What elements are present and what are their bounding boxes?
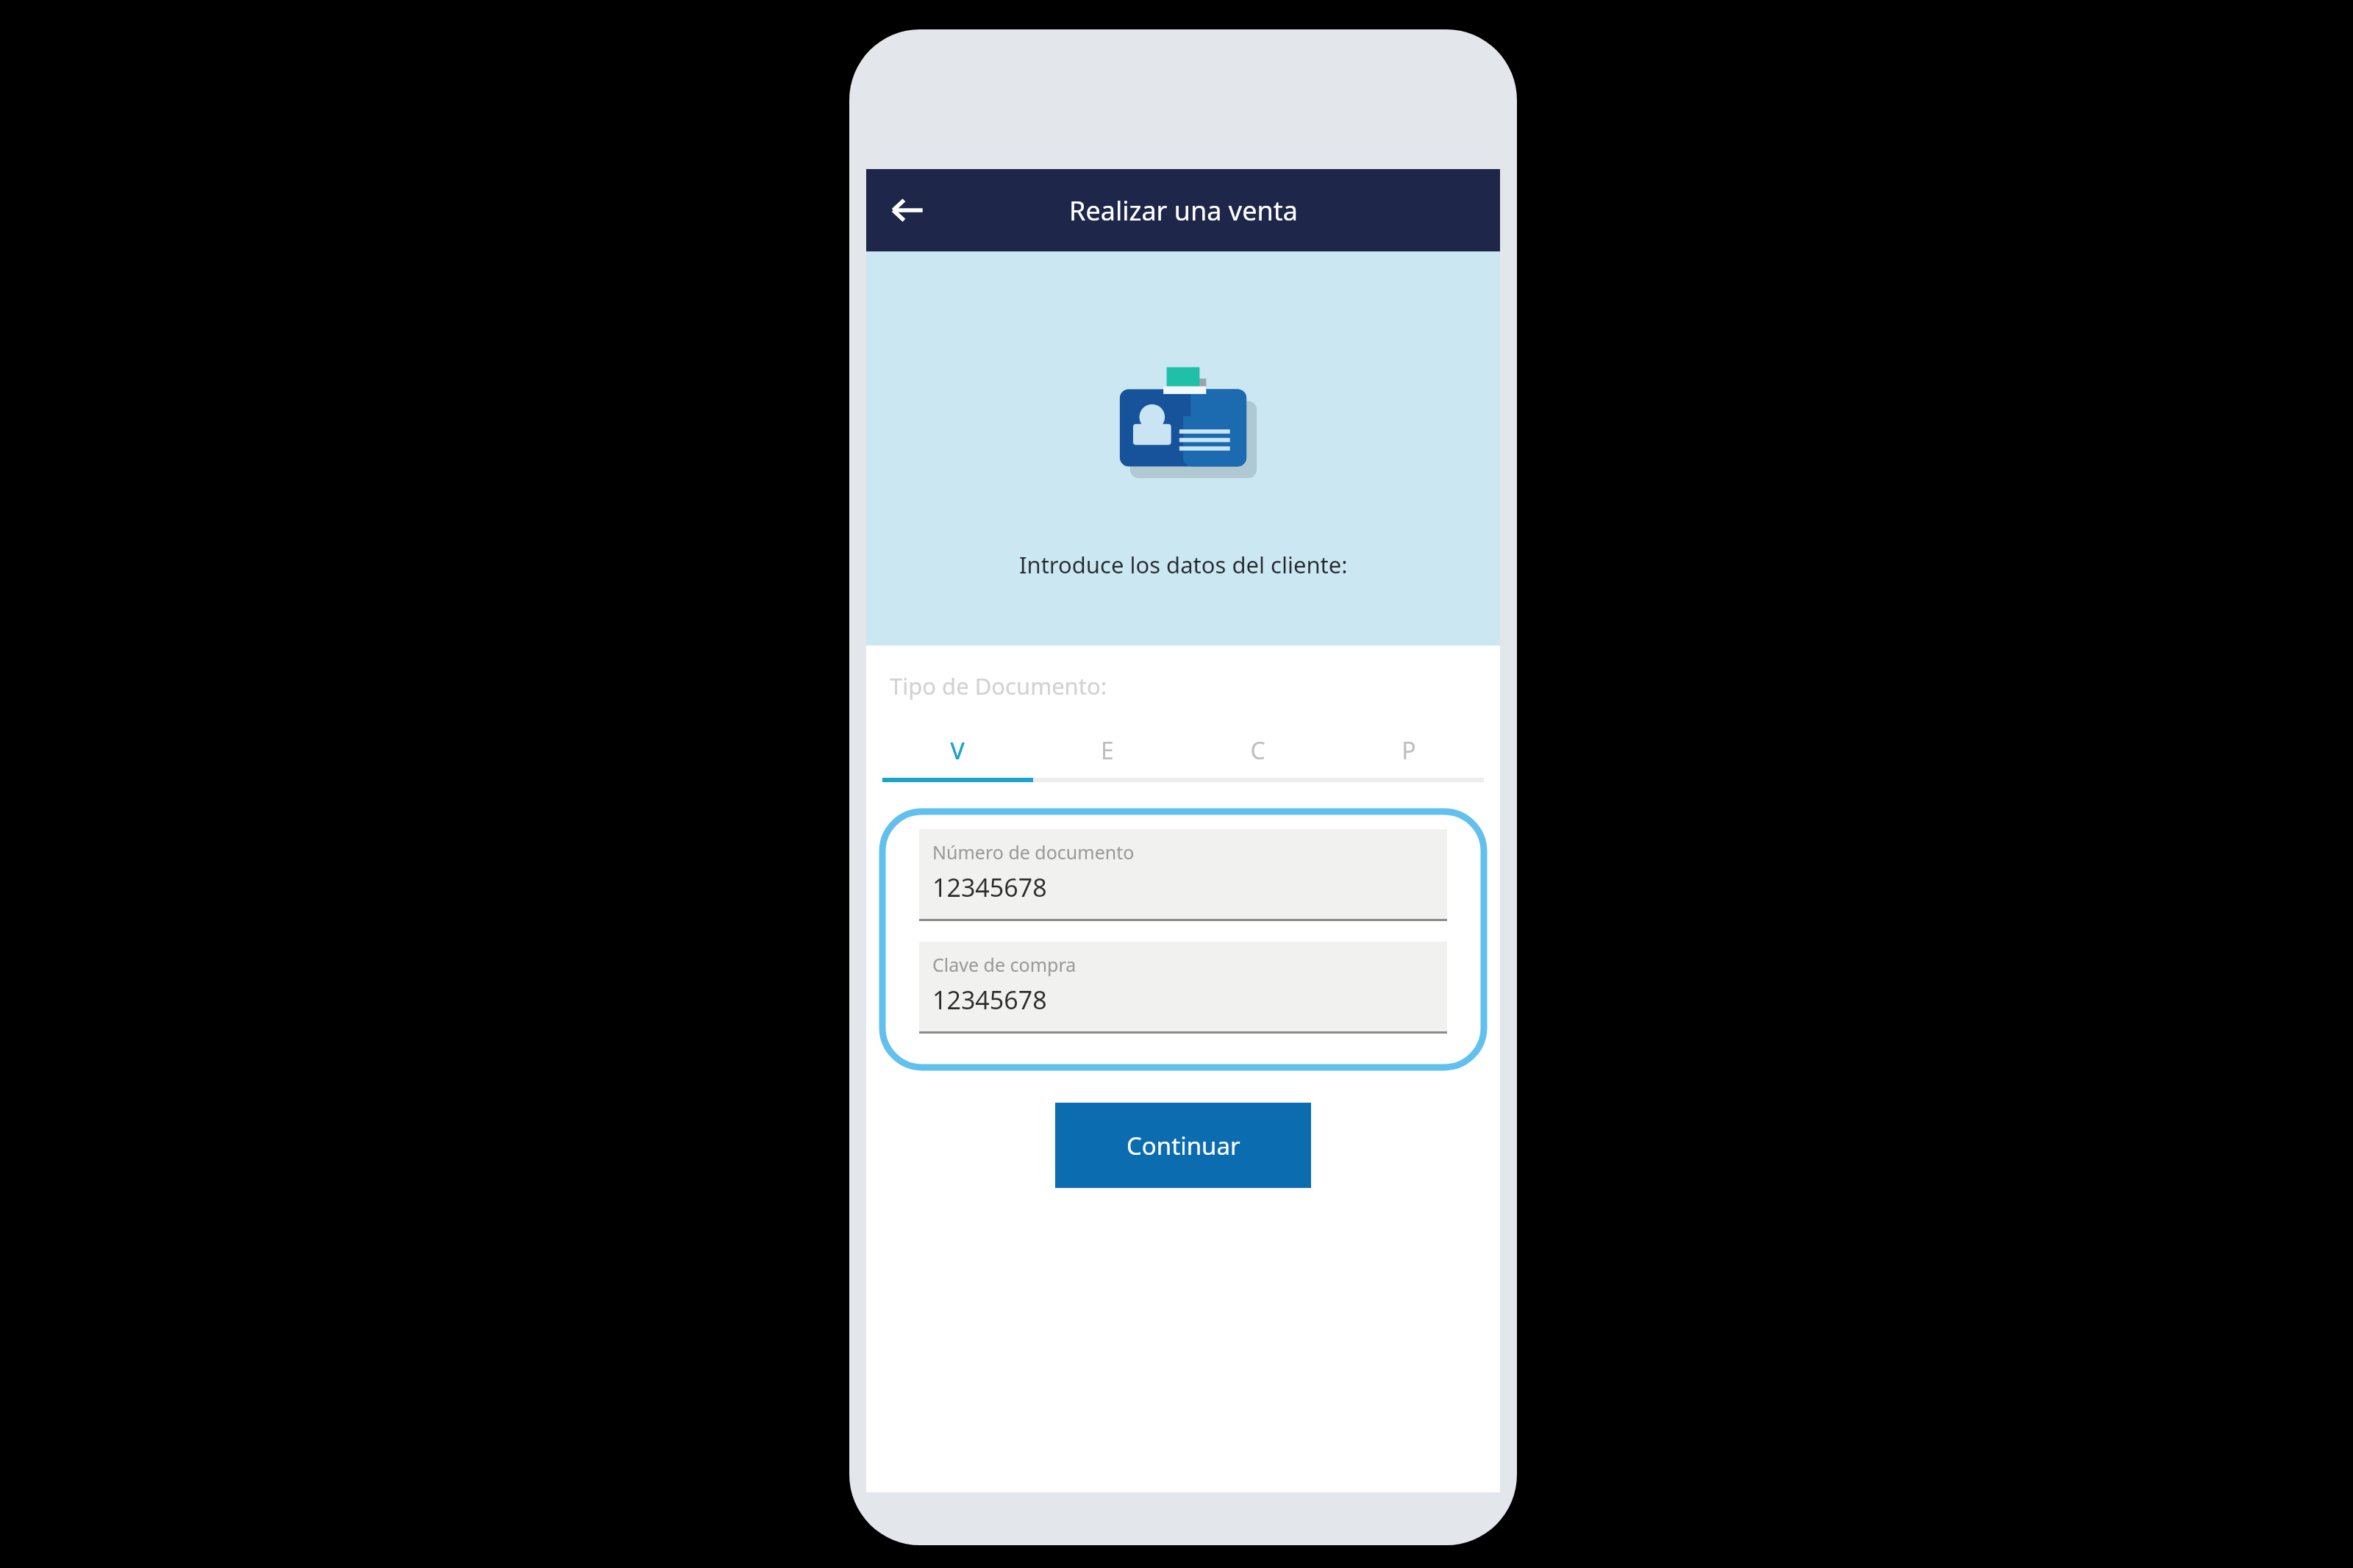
staticText: P xyxy=(1402,734,1416,767)
button[interactable]: Número de documento xyxy=(919,829,1447,921)
staticText: Clave de compra xyxy=(932,952,1076,977)
staticText: Tipo de Documento: xyxy=(890,670,1107,701)
button[interactable]: E xyxy=(1032,723,1182,778)
button[interactable]: C xyxy=(1182,723,1333,778)
button[interactable]: Clave de compra xyxy=(919,942,1447,1034)
staticText: C xyxy=(1250,734,1265,767)
staticText: E xyxy=(1101,734,1114,767)
staticText: Número de documento xyxy=(932,840,1135,864)
button[interactable]: Continuar xyxy=(1055,1103,1311,1188)
staticText: V xyxy=(950,734,965,767)
staticText: Continuar xyxy=(1126,1129,1240,1162)
button[interactable]: Back xyxy=(879,182,935,238)
staticText: Realizar una venta xyxy=(1069,193,1298,229)
button[interactable]: P xyxy=(1333,723,1484,778)
staticText: 12345678 xyxy=(932,983,1047,1017)
staticText: 12345678 xyxy=(932,870,1047,904)
button[interactable]: V xyxy=(882,723,1032,778)
staticText: Introduce los datos del cliente: xyxy=(1019,549,1348,580)
